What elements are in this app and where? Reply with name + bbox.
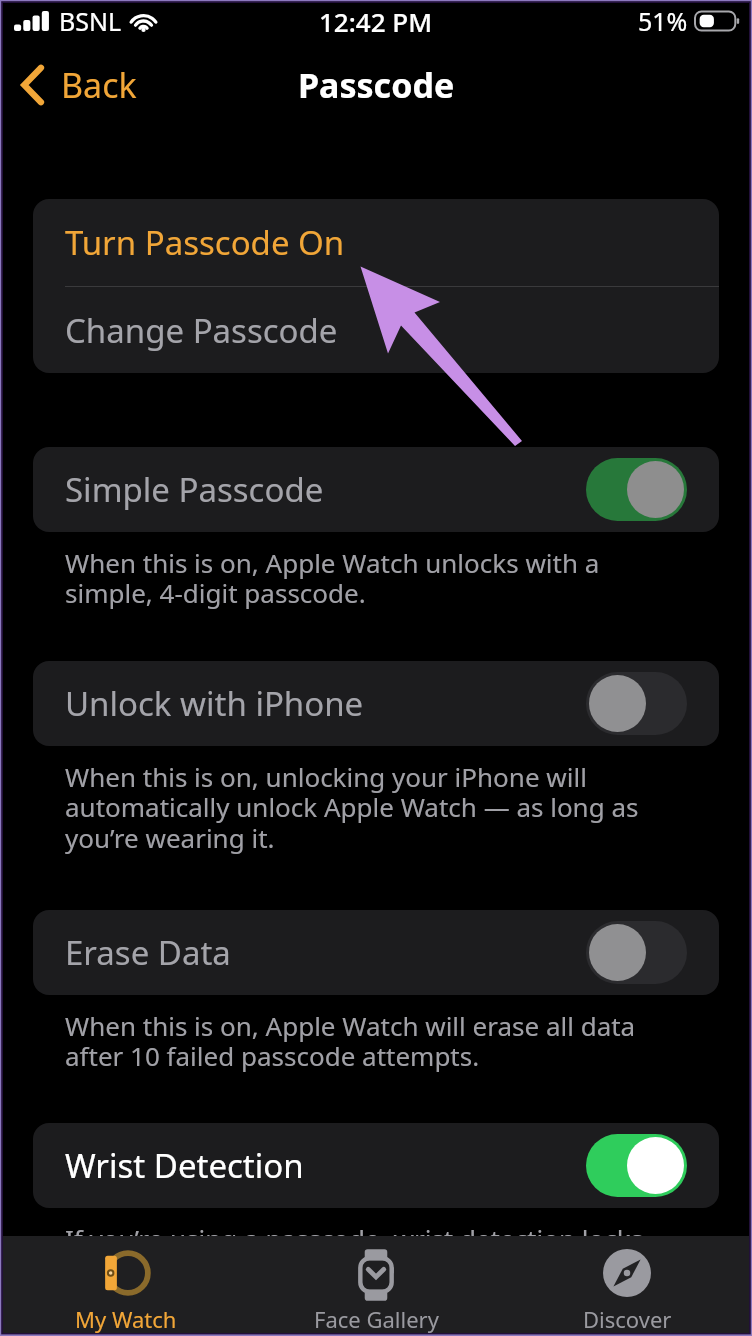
staticText: When this is on, Apple Watch will erase … xyxy=(65,1008,636,1074)
button[interactable]: Back xyxy=(20,62,137,108)
staticText: When this is on, Apple Watch unlocks wit… xyxy=(65,545,600,611)
staticText: My Watch xyxy=(75,1304,177,1334)
staticText: Turn Passcode On xyxy=(65,220,345,265)
staticText: Face Gallery xyxy=(314,1304,439,1334)
staticText: Simple Passcode xyxy=(65,467,324,512)
button[interactable]: My Watch tab xyxy=(1,1236,251,1336)
staticText: When this is on, unlocking your iPhone w… xyxy=(65,759,639,856)
staticText: 51% xyxy=(638,4,688,38)
button[interactable]: Erase Data xyxy=(33,910,719,995)
button[interactable]: Simple Passcode xyxy=(33,447,719,532)
staticText: Erase Data xyxy=(65,930,231,975)
staticText: If you’re using a passcode, wrist detect… xyxy=(65,1221,644,1256)
staticText: Discover xyxy=(583,1304,672,1334)
button[interactable]: Unlock with iPhone xyxy=(33,661,719,746)
button[interactable]: Wrist Detection xyxy=(33,1123,719,1208)
staticText: Change Passcode xyxy=(65,308,338,353)
button[interactable]: Discover tab xyxy=(502,1236,752,1336)
button[interactable]: Change Passcode xyxy=(33,287,719,373)
staticText: Back xyxy=(61,62,137,108)
staticText: Unlock with iPhone xyxy=(65,681,364,726)
staticText: 12:42 PM xyxy=(319,4,433,39)
staticText: BSNL xyxy=(59,4,122,38)
button[interactable]: Face Gallery tab xyxy=(251,1236,501,1336)
staticText: Wrist Detection xyxy=(65,1143,304,1188)
staticText: Passcode xyxy=(298,62,455,108)
button[interactable]: Turn Passcode On xyxy=(33,199,719,286)
